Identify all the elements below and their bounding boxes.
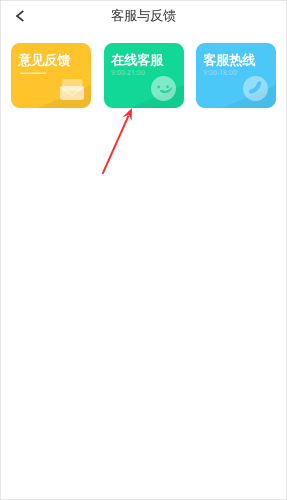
button[interactable]: Back [0, 0, 38, 32]
button[interactable]: 在线客服 [104, 43, 184, 108]
button[interactable]: 意见反馈 [11, 43, 91, 108]
staticText: 客服与反馈 [111, 7, 176, 24]
button[interactable]: 客服热线 [196, 43, 276, 108]
staticText: 在线客服 [111, 52, 163, 68]
staticText: 9:00-18:00 [203, 68, 237, 77]
staticText: 客服热线 [203, 52, 255, 68]
staticText: 9:00-21:00 [111, 68, 145, 77]
staticText: 意见反馈 [18, 52, 70, 68]
